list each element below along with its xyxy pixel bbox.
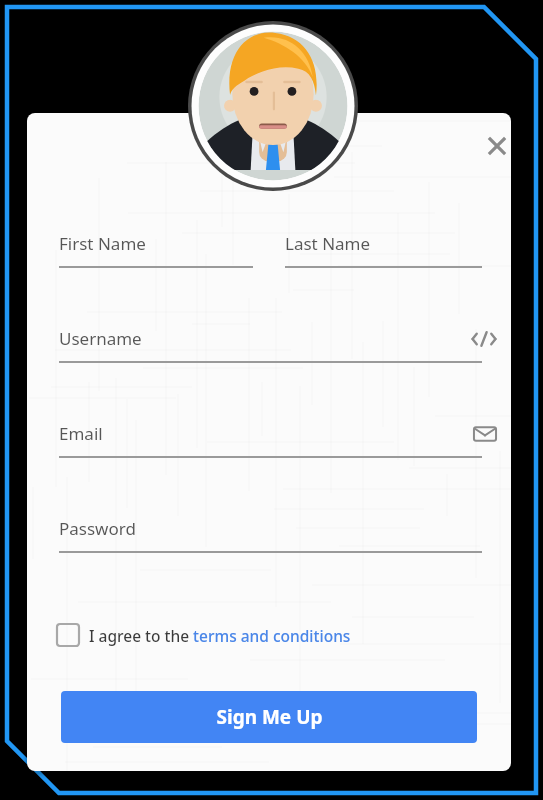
staticText: Username	[59, 327, 142, 350]
button[interactable]: Code	[471, 326, 497, 352]
staticText: First Name	[59, 232, 146, 255]
staticText: Last Name	[285, 232, 371, 255]
staticText: Email	[59, 422, 103, 445]
staticText: I agree to the terms and conditions	[89, 625, 351, 646]
staticText: Password	[59, 517, 136, 540]
button[interactable]: I agree to the terms and conditions	[57, 618, 391, 652]
button[interactable]: Close	[483, 132, 511, 160]
staticText: Sign Me Up	[216, 704, 323, 730]
button[interactable]: Email	[473, 422, 497, 446]
button[interactable]: Sign Me Up	[61, 691, 477, 743]
